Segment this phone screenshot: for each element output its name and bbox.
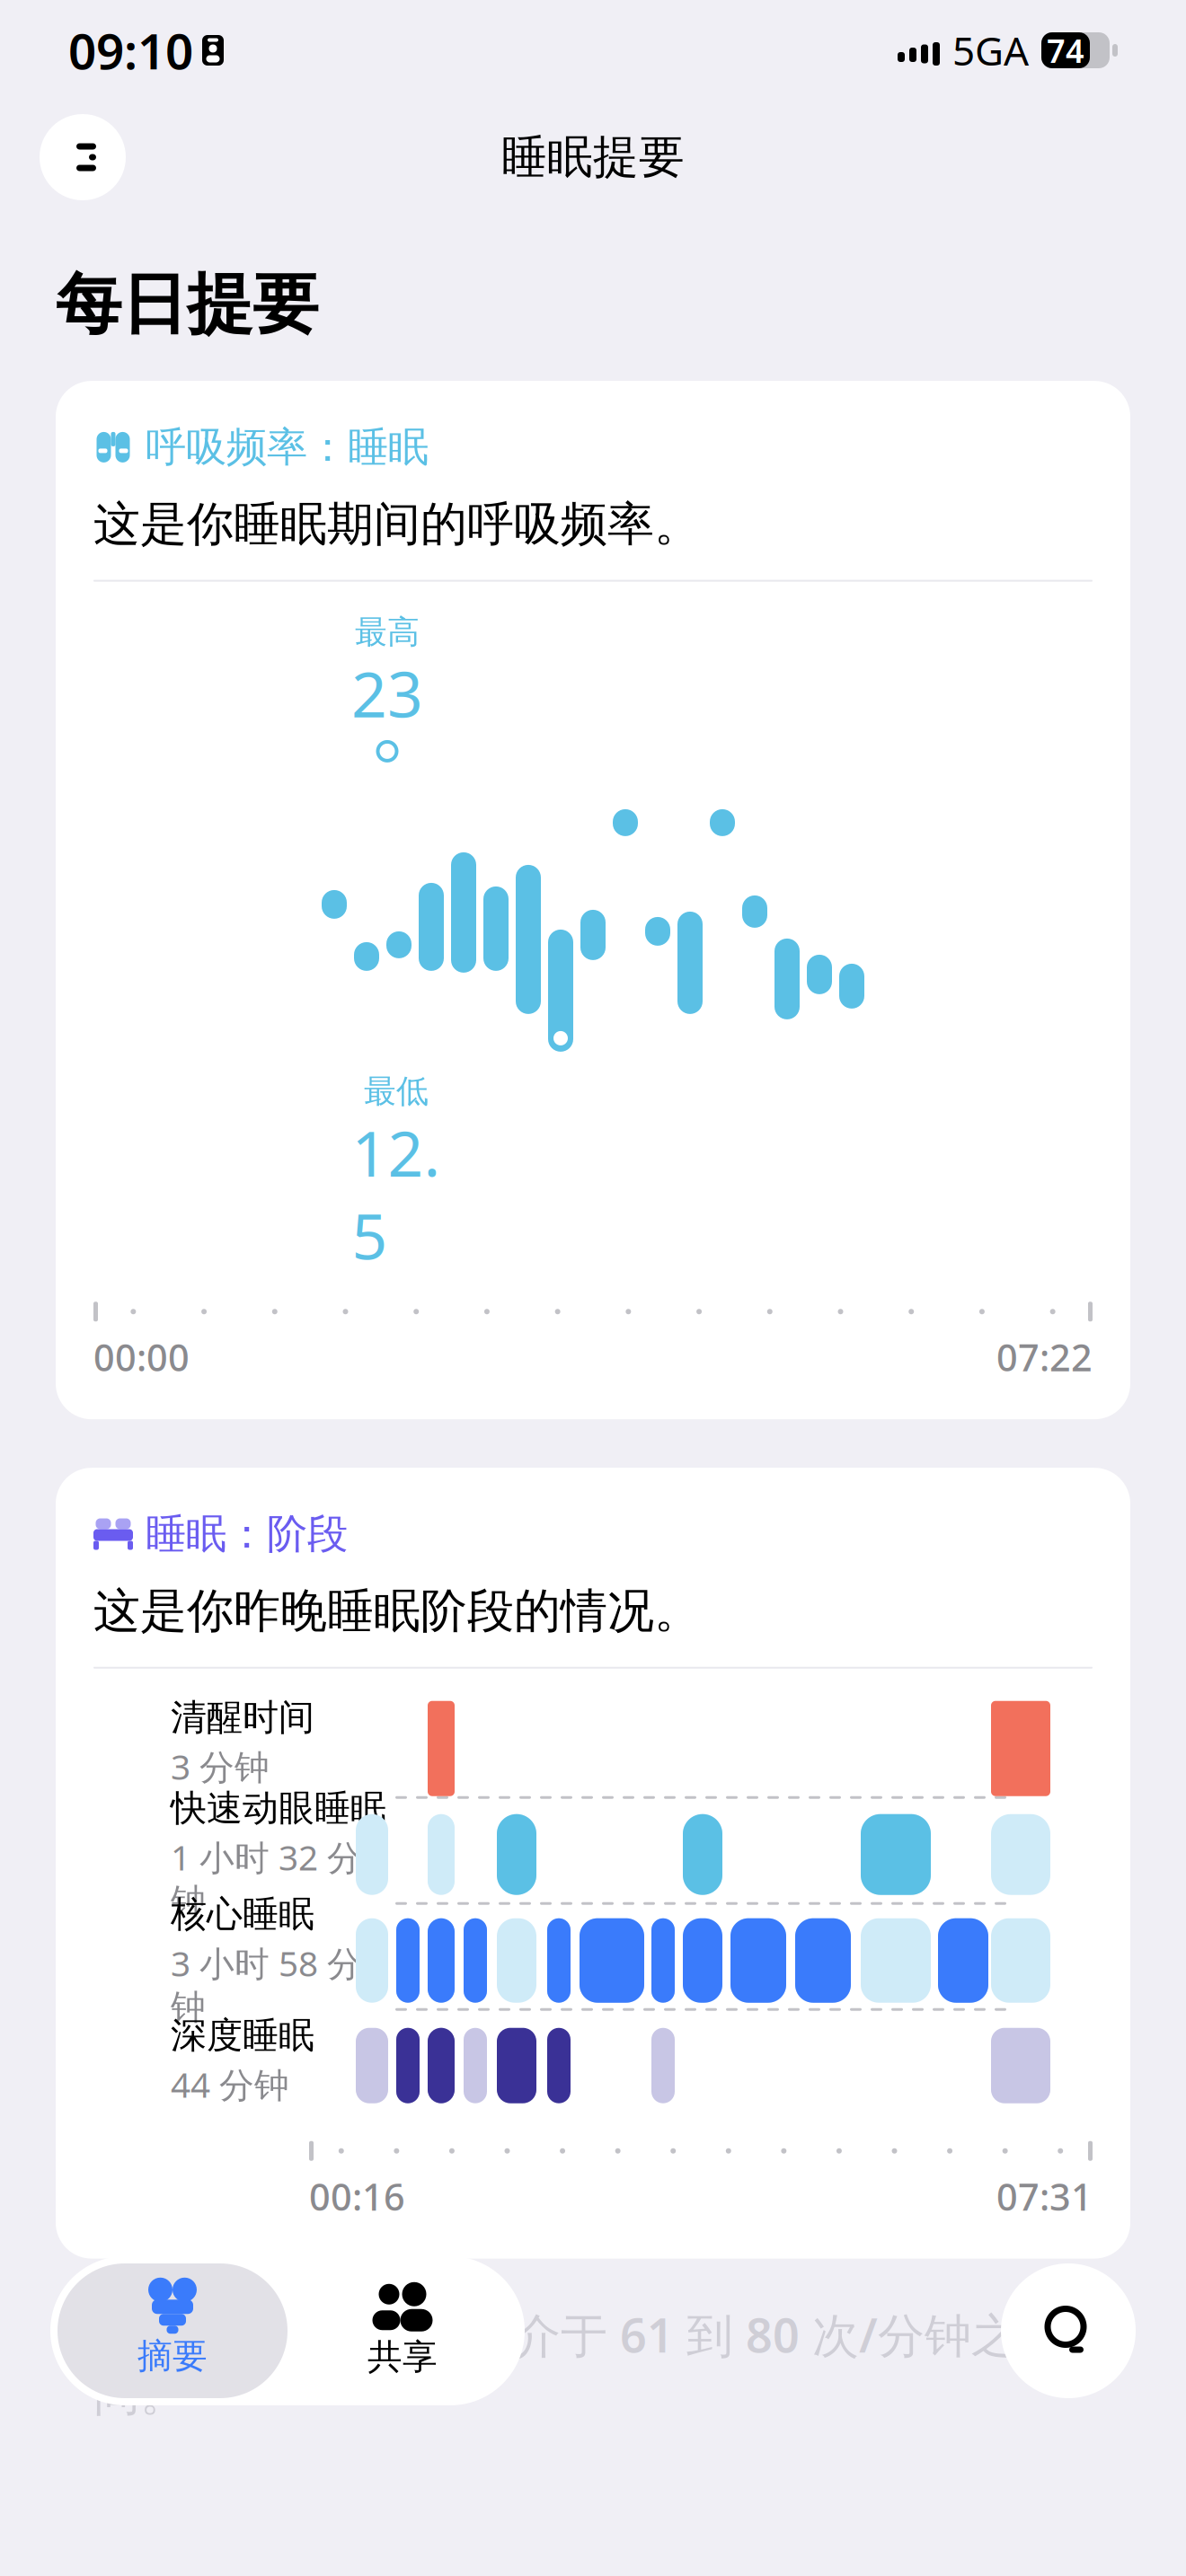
staticText: 09:10 [68, 18, 193, 83]
button[interactable]: 返回 [40, 114, 126, 200]
staticText: 44 分钟 [171, 2061, 289, 2107]
staticText: 1 小时 32 分钟 [171, 1834, 362, 1923]
button[interactable]: 共享 [288, 2263, 518, 2398]
button[interactable]: 摘要 [58, 2263, 288, 2398]
staticText: 最高 [355, 612, 420, 652]
staticText: 23 [351, 652, 423, 735]
staticText: 5GA [952, 24, 1029, 77]
staticText: 睡眠提要 [501, 129, 685, 185]
staticText: 快速动眼睡眠 [171, 1786, 386, 1830]
staticText: 睡眠期间，你的心率介于 61 到 80 次/分钟之间。 [93, 2303, 1018, 2423]
staticText: 共享 [367, 2336, 438, 2378]
staticText: 07:22 [996, 1332, 1093, 1382]
staticText: 最低 [364, 1071, 429, 1111]
staticText: 深度睡眠 [171, 2013, 314, 2058]
button[interactable]: 搜索 [1001, 2263, 1136, 2398]
staticText: 12.5 [352, 1111, 441, 1277]
staticText: 00:00 [93, 1332, 190, 1382]
staticText: 清醒时间 [171, 1696, 314, 1740]
staticText: 07:31 [996, 2172, 1093, 2221]
staticText: 3 小时 58 分钟 [171, 1940, 362, 2029]
staticText: 这是你昨晚睡眠阶段的情况。 [93, 1582, 701, 1640]
staticText: 睡眠：阶段 [146, 1509, 348, 1559]
staticText: 核心睡眠 [171, 1892, 314, 1936]
staticText: 每日提要 [56, 264, 318, 345]
staticText: 00:16 [309, 2172, 405, 2221]
staticText: 3 分钟 [171, 1743, 270, 1789]
staticText: 这是你睡眠期间的呼吸频率。 [93, 496, 701, 553]
staticText: 呼吸频率：睡眠 [146, 422, 429, 472]
staticText: 摘要 [137, 2335, 208, 2377]
staticText: 74 [1047, 29, 1084, 72]
